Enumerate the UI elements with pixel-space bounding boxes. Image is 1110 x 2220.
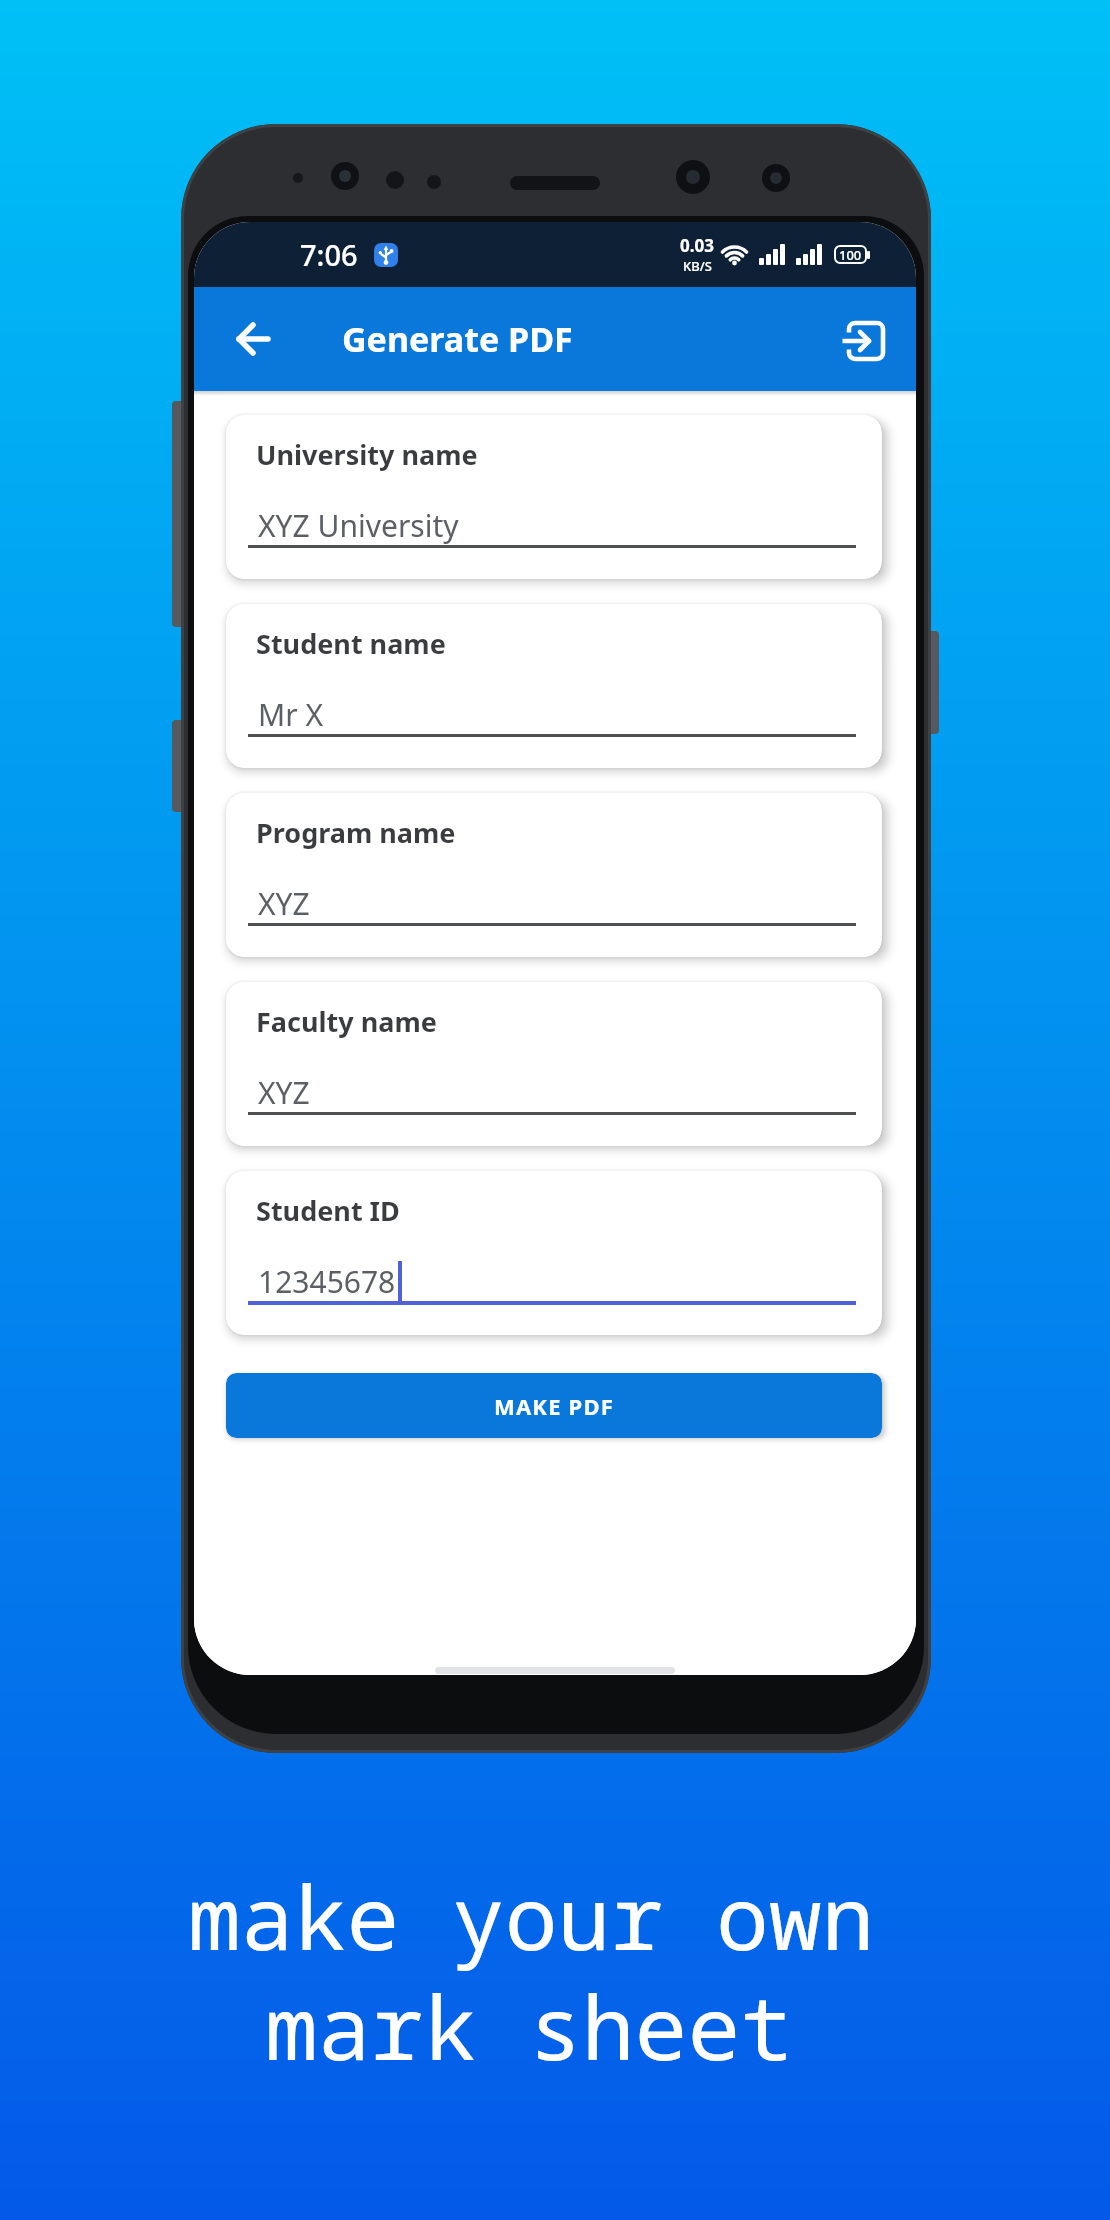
staticText: 7:06 [300,235,358,274]
staticText: Student name [256,625,446,662]
button[interactable] [838,315,890,367]
staticText: 100 [839,246,862,264]
staticText: Faculty name [256,1003,437,1040]
staticText: MAKE PDF [494,1391,615,1421]
staticText: Student ID [256,1192,400,1229]
staticText: XYZ University [258,505,459,546]
button[interactable]: Student ID [226,1171,882,1335]
staticText: XYZ [258,883,310,924]
staticText: Mr X [258,694,323,735]
staticText: Program name [256,814,456,851]
button[interactable] [228,315,276,363]
button[interactable]: MAKE PDF [226,1373,882,1438]
button[interactable]: University name [226,415,882,579]
staticText: mark sheet [265,1966,794,2086]
button[interactable]: Student name [226,604,882,768]
button[interactable]: Faculty name [226,982,882,1146]
staticText: 0.03 [680,234,714,257]
staticText: XYZ [258,1072,310,1113]
staticText: KB/S [683,257,712,275]
staticText: Generate PDF [342,316,573,362]
staticText: University name [256,436,478,473]
staticText: 12345678 [258,1261,396,1302]
staticText: make your own [188,1856,875,1976]
button[interactable]: Program name [226,793,882,957]
